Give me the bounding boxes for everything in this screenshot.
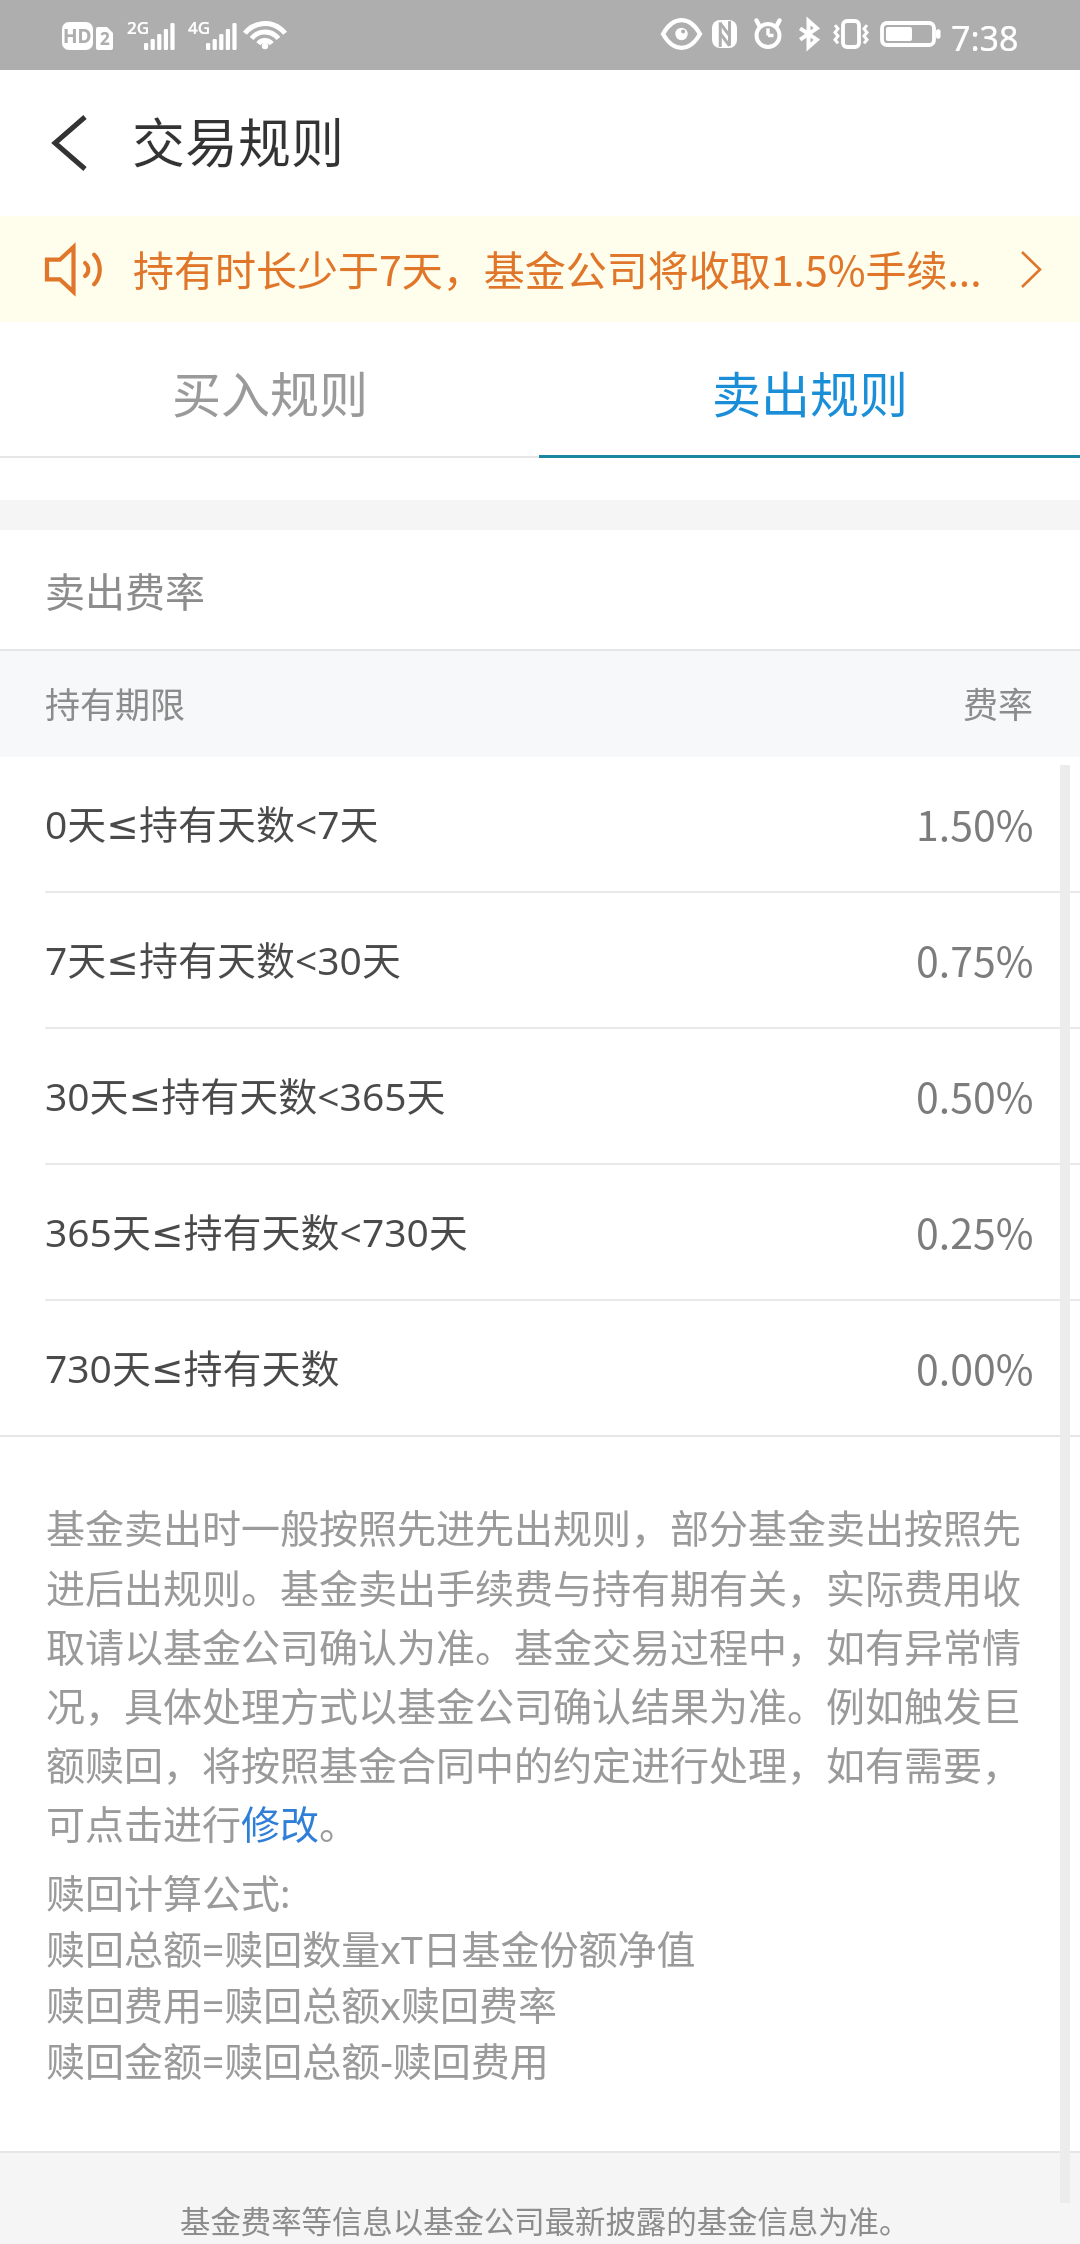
staticText: 7:38 <box>951 15 1019 61</box>
staticText: HD <box>63 23 92 49</box>
button[interactable]: 7天≤持有天数<30天 <box>0 893 1080 1029</box>
staticText: 卖出费率 <box>45 561 205 619</box>
staticText: 365天≤持有天数<730天 <box>45 1202 468 1259</box>
button[interactable]: 持有时长少于7天，基金公司将收取1.5%手续... <box>0 216 1080 322</box>
staticText: 费率 <box>963 677 1034 728</box>
staticText: 4G <box>188 16 211 39</box>
button[interactable]: 买入规则 <box>0 322 540 458</box>
staticText: 持有期限 <box>45 677 186 728</box>
staticText: 持有时长少于7天，基金公司将收取1.5%手续... <box>133 238 982 297</box>
button[interactable]: 卖出规则 <box>540 322 1080 458</box>
staticText: 0.75% <box>916 929 1034 988</box>
button[interactable]: 0天≤持有天数<7天 <box>0 757 1080 893</box>
staticText: 买入规则 <box>172 356 369 427</box>
button[interactable]: 30天≤持有天数<365天 <box>0 1029 1080 1165</box>
staticText: 2G <box>127 16 150 39</box>
button[interactable]: 修改 <box>240 1802 322 1846</box>
staticText: 1.50% <box>916 793 1034 852</box>
button[interactable]: 365天≤持有天数<730天 <box>0 1165 1080 1301</box>
staticText: 基金费率等信息以基金公司最新披露的基金信息为准。 <box>180 2198 910 2242</box>
staticText: 30天≤持有天数<365天 <box>45 1066 446 1123</box>
button[interactable]: 730天≤持有天数 <box>0 1301 1080 1437</box>
staticText: 交易规则 <box>132 102 344 179</box>
button[interactable]: Back <box>19 93 119 193</box>
staticText: 730天≤持有天数 <box>45 1338 340 1395</box>
staticText: 7天≤持有天数<30天 <box>45 930 401 987</box>
staticText: 卖出规则 <box>712 356 909 427</box>
staticText: 0.25% <box>916 1201 1034 1260</box>
staticText: 0.00% <box>916 1337 1034 1396</box>
staticText: 0天≤持有天数<7天 <box>45 794 379 851</box>
staticText: 2 <box>100 27 110 50</box>
staticText: 0.50% <box>916 1065 1034 1124</box>
staticText: 基金卖出时一般按照先进先出规则，部分基金卖出按照先进后出规则。基金卖出手续费与持… <box>46 1498 1034 1850</box>
staticText: 赎回计算公式: 赎回总额=赎回数量xT日基金份额净值 赎回费用=赎回总额x赎回费… <box>46 1863 696 2088</box>
